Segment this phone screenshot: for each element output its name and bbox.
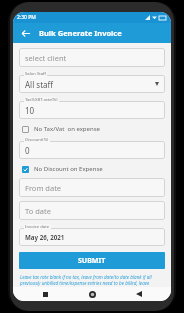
button[interactable]: select client (19, 48, 165, 67)
button[interactable] (19, 101, 165, 119)
button[interactable]: Recents (30, 287, 60, 301)
staticText: select client (25, 53, 67, 63)
staticText: No Discount on Expense (34, 165, 103, 173)
staticText: From date (25, 183, 62, 193)
button[interactable]: No Discount on Expense (19, 162, 165, 175)
button[interactable]: Back (124, 287, 154, 301)
staticText: Invoice date (25, 224, 50, 230)
staticText: All staff (25, 79, 54, 90)
staticText: 0 (25, 145, 30, 156)
staticText: Leave tax rate blank if no tax, leave fr… (20, 274, 164, 287)
button[interactable]: Home (77, 287, 107, 301)
staticText: Discount(%) (25, 137, 49, 143)
staticText: May 26, 2021 (25, 233, 65, 241)
staticText: Salon Staff (25, 71, 46, 77)
staticText: Bulk Generate Invoice (39, 28, 122, 38)
button[interactable] (19, 75, 165, 93)
button[interactable]: To date (19, 201, 165, 220)
staticText: SUBMIT (78, 256, 106, 266)
button[interactable]: Back (18, 26, 32, 40)
staticText: No Tax/Vat on expense (34, 125, 100, 133)
button[interactable] (19, 141, 165, 159)
staticText: Tax%XBT-rate(%) (25, 97, 58, 103)
button[interactable]: No Tax/Vat on expense (19, 122, 165, 135)
staticText: To date (25, 206, 51, 216)
button[interactable]: From date (19, 178, 165, 197)
staticText: 10 (25, 105, 35, 116)
staticText: 2:30 PM (17, 14, 36, 21)
button[interactable] (19, 228, 165, 246)
button[interactable]: SUBMIT (19, 252, 165, 269)
